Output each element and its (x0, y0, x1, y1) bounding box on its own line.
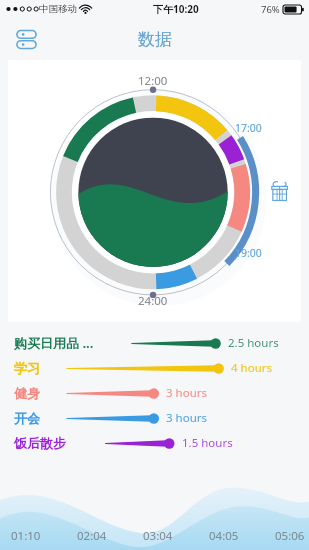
staticText: 数据 (138, 29, 172, 50)
staticText: 购买日用品 ... (14, 334, 94, 352)
staticText: 3 hours (166, 410, 207, 426)
staticText: 05:06 (275, 528, 305, 544)
staticText: 下午10:20 (153, 2, 199, 16)
staticText: 2.5 hours (228, 335, 279, 351)
staticText: 02:04 (77, 528, 107, 544)
staticText: 3 hours (166, 385, 207, 401)
button[interactable]: Menu (11, 24, 41, 54)
button[interactable]: 开会 (0, 405, 309, 430)
button[interactable]: 健身 (0, 380, 309, 405)
staticText: 12:00 (138, 73, 168, 89)
staticText: 04:05 (209, 528, 239, 544)
staticText: 学习 (14, 360, 40, 376)
staticText: 01:10 (11, 528, 41, 544)
staticText: 24:00 (138, 293, 168, 309)
staticText: 开会 (14, 410, 40, 426)
staticText: 76% (261, 3, 280, 16)
staticText: 19:00 (235, 246, 262, 260)
staticText: 17:00 (235, 121, 262, 135)
staticText: 4 hours (231, 360, 272, 376)
staticText: 1.5 hours (182, 435, 233, 451)
button[interactable]: 饭后散步 (0, 430, 309, 455)
staticText: 健身 (14, 385, 40, 401)
button[interactable]: 学习 (0, 355, 309, 380)
staticText: 中国移动 (39, 3, 77, 15)
staticText: 03:04 (143, 528, 173, 544)
button[interactable]: 购买日用品 ... (0, 330, 309, 355)
staticText: 饭后散步 (14, 435, 66, 451)
